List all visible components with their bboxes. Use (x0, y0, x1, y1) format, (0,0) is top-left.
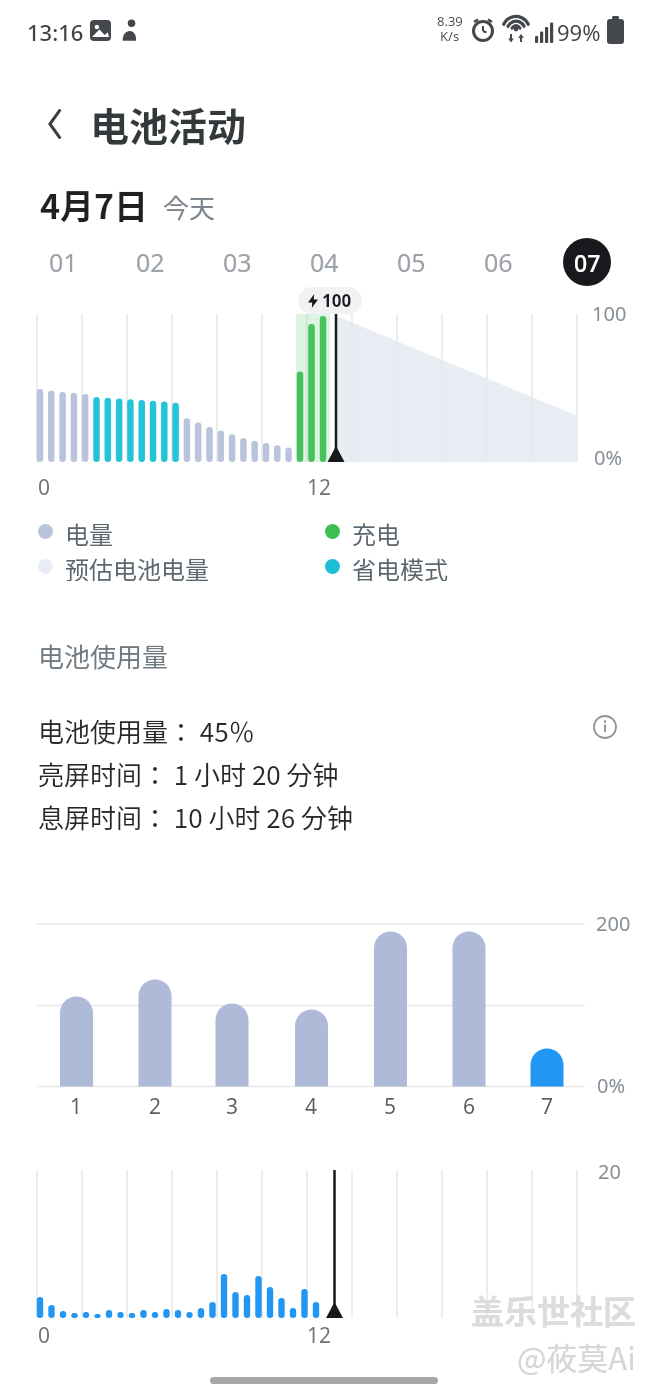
staticText: 电池使用量 (38, 637, 169, 675)
staticText: 04 (310, 245, 339, 279)
staticText: 省电模式 (352, 551, 448, 581)
staticText: 01 (49, 245, 78, 279)
staticText: 12 (307, 473, 332, 502)
button[interactable] (591, 713, 619, 741)
staticText: 99% (557, 17, 601, 47)
button[interactable]: 04 (294, 238, 354, 286)
staticText: 6 (463, 1092, 476, 1121)
staticText: 200 (596, 910, 631, 937)
button[interactable]: 02 (120, 238, 180, 286)
staticText: 02 (136, 245, 165, 279)
staticText: 充电 (352, 516, 400, 546)
button[interactable]: 07 (563, 238, 611, 286)
button[interactable]: 03 (207, 238, 267, 286)
staticText: 8.39 (437, 12, 463, 30)
staticText: 1 (70, 1092, 83, 1121)
staticText: 0 (38, 473, 51, 502)
staticText: 7 (541, 1092, 554, 1121)
staticText: 电量 (65, 516, 113, 546)
staticText: 06 (484, 245, 513, 279)
button[interactable] (30, 100, 78, 148)
staticText: 盖乐世社区 (471, 1286, 636, 1334)
staticText: 0% (597, 1072, 626, 1099)
staticText: 100 (592, 300, 627, 327)
staticText: 4月7日 (40, 180, 149, 229)
staticText: K/s (440, 27, 460, 45)
staticText: 0% (594, 444, 623, 471)
staticText: 亮屏时间： 1 小时 20 分钟 (38, 755, 339, 793)
staticText: 13:16 (27, 17, 84, 47)
staticText: 5 (384, 1092, 397, 1121)
staticText: 今天 (163, 188, 216, 226)
staticText: 20 (598, 1158, 621, 1185)
staticText: 电池使用量： 45％ (38, 712, 255, 750)
staticText: 预估电池电量 (65, 551, 209, 581)
staticText: 息屏时间： 10 小时 26 分钟 (38, 798, 354, 836)
staticText: 12 (307, 1321, 332, 1350)
staticText: 07 (574, 247, 601, 278)
staticText: 03 (223, 245, 252, 279)
button[interactable]: 01 (33, 238, 93, 286)
button[interactable]: 06 (468, 238, 528, 286)
staticText: 05 (397, 245, 426, 279)
staticText: 2 (149, 1092, 162, 1121)
staticText: @莜莫Ai (517, 1334, 636, 1379)
staticText: 0 (38, 1321, 51, 1350)
staticText: 电池活动 (90, 96, 247, 152)
staticText: 4 (305, 1092, 318, 1121)
staticText: 100 (322, 289, 352, 312)
button[interactable]: 05 (381, 238, 441, 286)
staticText: 3 (226, 1092, 239, 1121)
